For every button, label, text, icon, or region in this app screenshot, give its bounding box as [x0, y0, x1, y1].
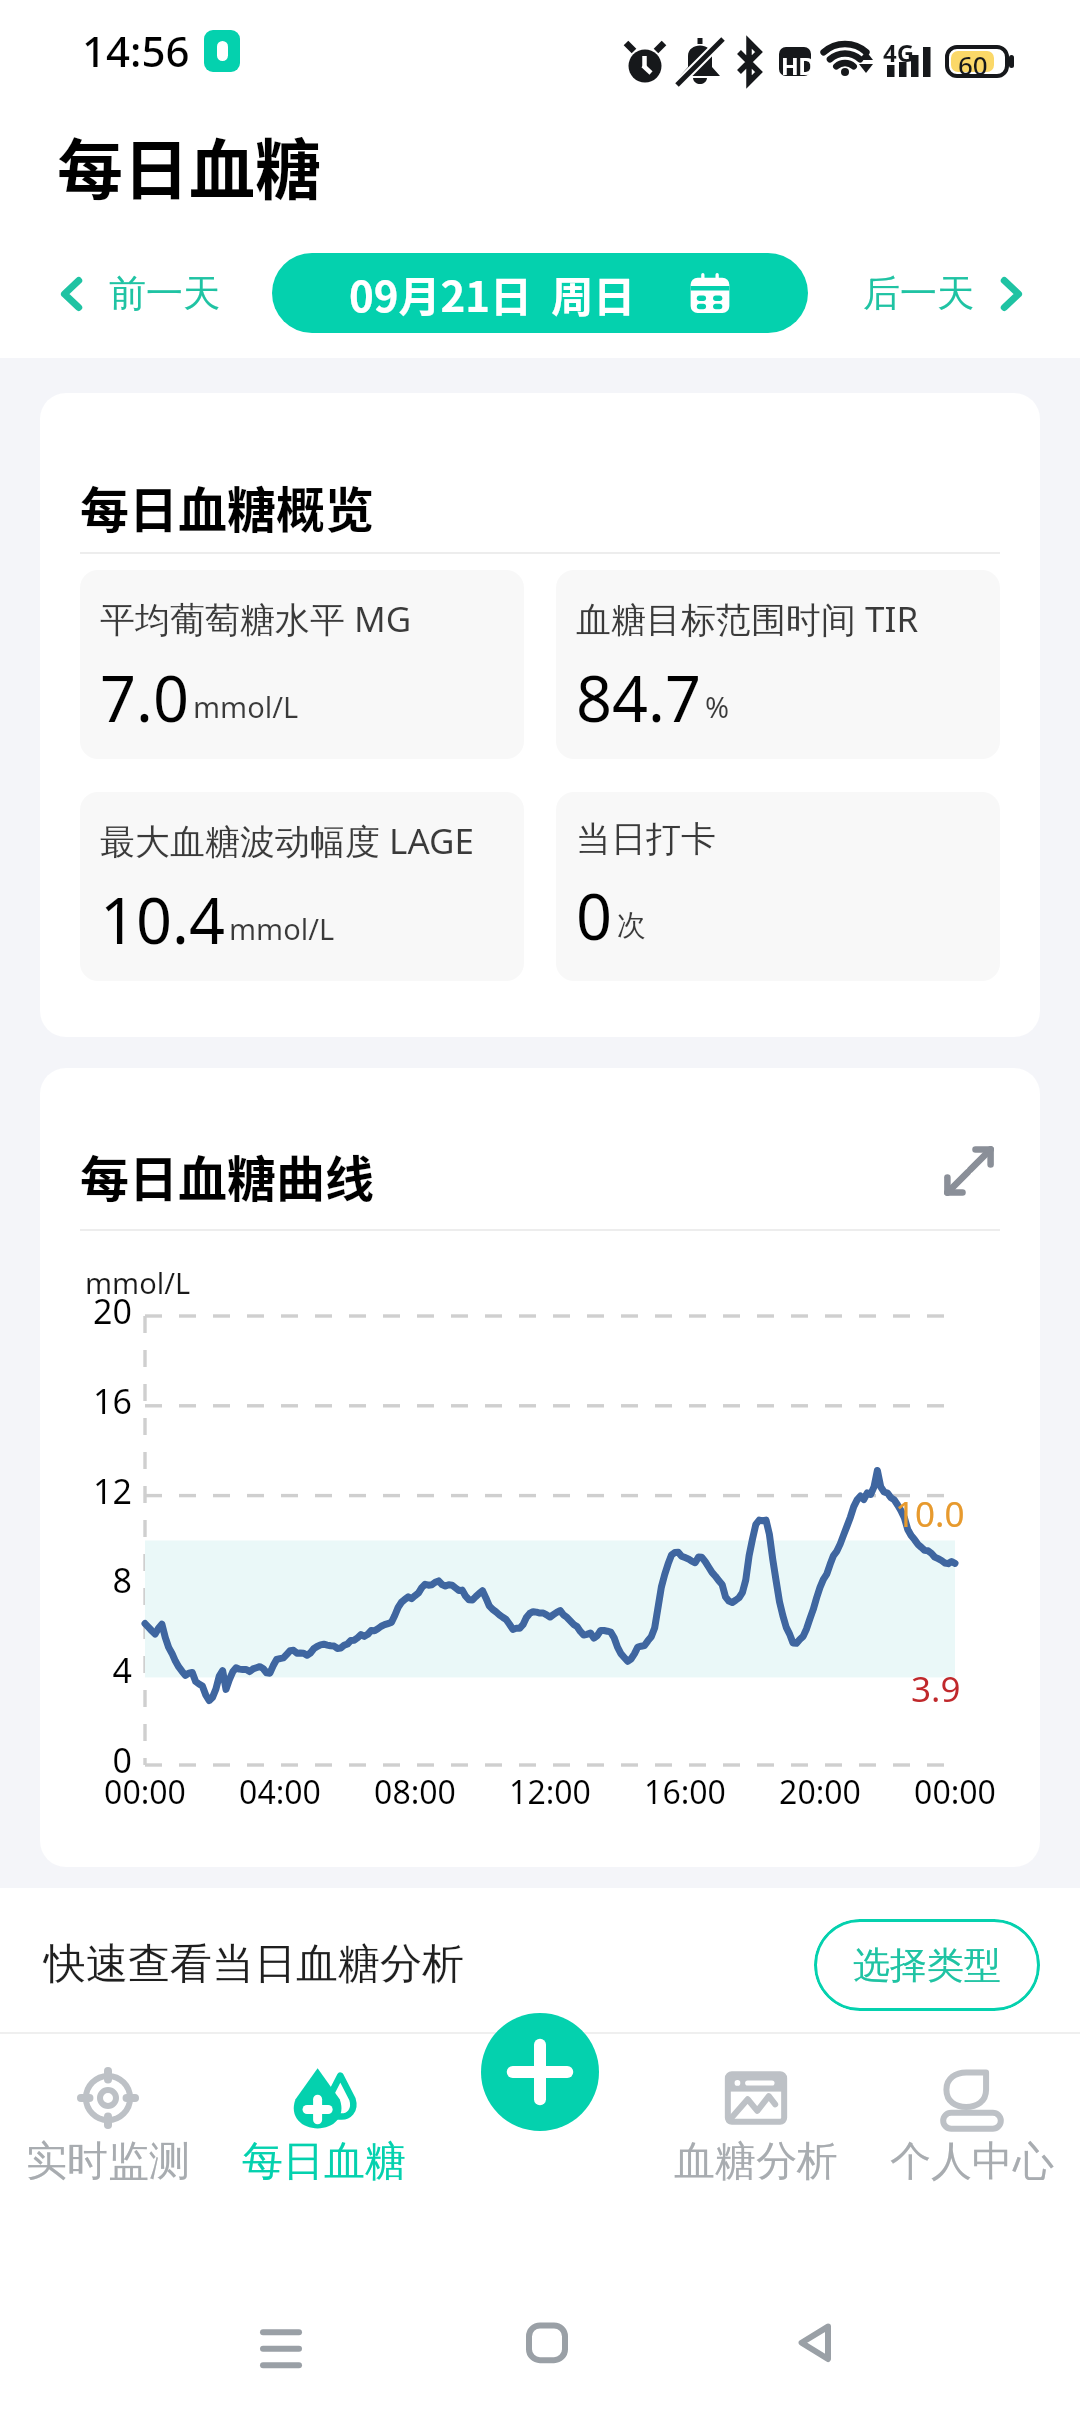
staticText: 每日血糖曲线 — [80, 1140, 375, 1211]
staticText: 12:00 — [483, 1770, 617, 1814]
staticText: mmol/L — [85, 1263, 191, 1302]
button[interactable]: 最大血糖波动幅度 LAGE — [80, 792, 524, 981]
button[interactable]: 选择类型 — [814, 1919, 1040, 2011]
button[interactable]: Home — [517, 2311, 577, 2371]
staticText: 最大血糖波动幅度 LAGE — [100, 817, 475, 865]
staticText: 20 — [80, 1288, 132, 1334]
staticText: 84.7 — [576, 655, 701, 741]
button[interactable]: 09月21日 周日 — [272, 253, 808, 333]
staticText: 08:00 — [348, 1770, 482, 1814]
staticText: mmol/L — [193, 687, 299, 726]
staticText: 10.0 — [895, 1490, 965, 1538]
staticText: 00:00 — [888, 1770, 1022, 1814]
staticText: 20:00 — [753, 1770, 887, 1814]
staticText: HD — [781, 50, 816, 81]
button[interactable]: 平均葡萄糖水平 MG — [80, 570, 524, 759]
staticText: 血糖分析 — [674, 2136, 838, 2188]
staticText: % — [705, 687, 730, 726]
staticText: mmol/L — [229, 909, 335, 948]
button[interactable]: 个人中心 — [864, 2034, 1080, 2208]
staticText: 实时监测 — [26, 2136, 190, 2188]
staticText: 选择类型 — [853, 1942, 1001, 1989]
staticText: 次 — [617, 907, 646, 944]
button[interactable]: 后一天 — [853, 260, 1042, 327]
button[interactable]: 当日打卡 — [556, 792, 1000, 981]
button[interactable]: Add record — [481, 2013, 599, 2131]
button[interactable]: Back — [786, 2311, 846, 2371]
button[interactable]: Recents — [251, 2313, 311, 2373]
staticText: 12 — [80, 1468, 132, 1514]
staticText: 3.9 — [911, 1665, 961, 1713]
staticText: 10.4 — [100, 877, 225, 963]
staticText: 当日打卡 — [576, 817, 716, 861]
button[interactable]: 血糖分析 — [648, 2034, 864, 2208]
staticText: 04:00 — [213, 1770, 347, 1814]
button[interactable]: Expand chart — [938, 1140, 1000, 1202]
staticText: 09月21日 周日 — [349, 263, 636, 324]
staticText: 血糖目标范围时间 TIR — [576, 595, 919, 643]
staticText: 每日血糖 — [57, 117, 321, 213]
button[interactable]: 实时监测 — [0, 2034, 216, 2208]
staticText: 平均葡萄糖水平 MG — [100, 595, 412, 643]
staticText: 每日血糖 — [242, 2136, 406, 2188]
staticText: 0 — [576, 873, 613, 959]
staticText: 00:00 — [78, 1770, 212, 1814]
staticText: 前一天 — [109, 270, 220, 317]
staticText: 4 — [80, 1647, 132, 1693]
staticText: 个人中心 — [890, 2136, 1054, 2188]
staticText: 16 — [80, 1378, 132, 1424]
staticText: 快速查看当日血糖分析 — [44, 1938, 464, 1991]
staticText: 60 — [958, 47, 988, 82]
staticText: 7.0 — [100, 655, 189, 741]
staticText: 4G — [883, 36, 915, 69]
button[interactable]: 每日血糖 — [216, 2034, 432, 2208]
staticText: 0 — [80, 1737, 132, 1783]
staticText: 后一天 — [863, 270, 974, 317]
staticText: 8 — [80, 1557, 132, 1603]
button[interactable]: 血糖目标范围时间 TIR — [556, 570, 1000, 759]
staticText: 每日血糖概览 — [80, 471, 375, 542]
button[interactable]: 前一天 — [41, 260, 230, 327]
staticText: 16:00 — [618, 1770, 752, 1814]
staticText: 14:56 — [82, 22, 190, 79]
